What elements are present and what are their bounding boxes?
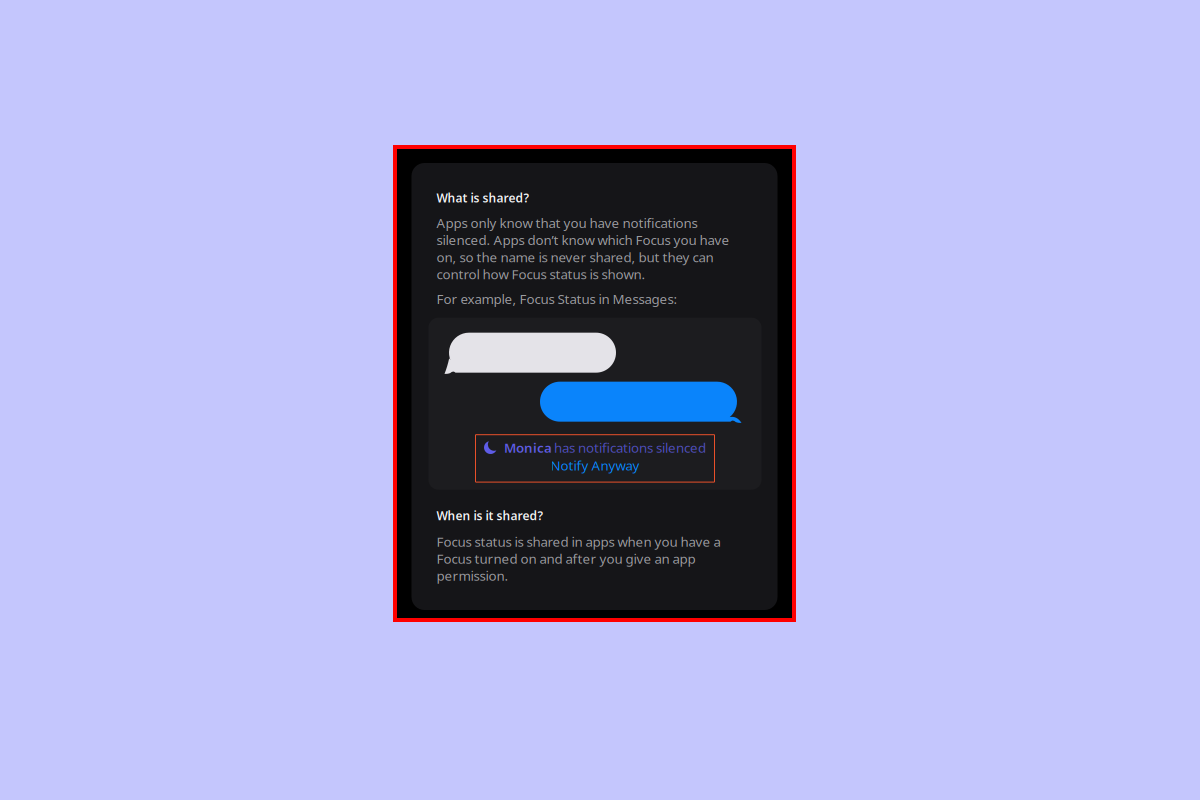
staticText: Focus status is shared in apps when you …	[436, 533, 720, 584]
staticText: Monica	[504, 439, 552, 456]
button[interactable]: Monica has notifications silenced. Notif…	[475, 435, 714, 482]
staticText: has notifications silenced	[554, 439, 706, 456]
staticText: For example, Focus Status in Messages:	[436, 290, 677, 308]
staticText: Apps only know that you have notificatio…	[436, 214, 729, 283]
staticText: When is it shared?	[436, 508, 543, 524]
staticText: What is shared?	[436, 190, 529, 206]
staticText: Notify Anyway	[550, 456, 639, 474]
